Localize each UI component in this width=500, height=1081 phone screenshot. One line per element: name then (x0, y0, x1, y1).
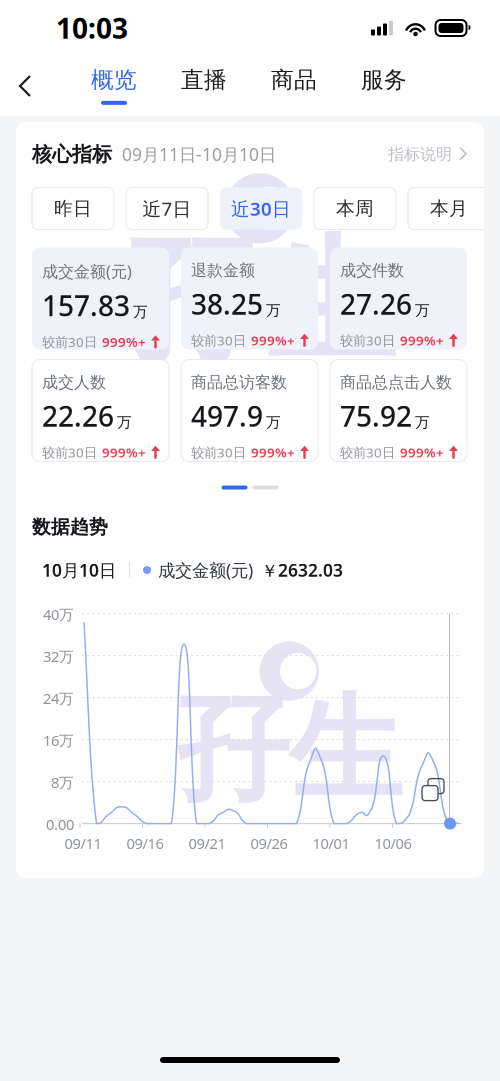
staticText: 较前30日 (42, 443, 97, 461)
staticText: 09/21 (188, 834, 225, 853)
staticText: 成交人数 (42, 373, 106, 392)
staticText: 999%+ (251, 331, 295, 349)
staticText: 16万 (43, 731, 74, 750)
staticText: 直播 (181, 66, 227, 94)
staticText: 万 (117, 413, 132, 431)
staticText: 157.83 (42, 287, 130, 324)
staticText: 09/26 (250, 834, 287, 853)
staticText: 昨日 (54, 197, 92, 220)
button[interactable]: 直播 (159, 56, 249, 116)
staticText: 较前30日 (340, 331, 395, 349)
button[interactable]: 商品 (249, 56, 339, 116)
button[interactable]: 指标说明 (388, 144, 468, 164)
staticText: 孖生 (126, 220, 396, 385)
staticText: 核心指标 (32, 142, 112, 167)
staticText: 10/06 (374, 834, 411, 853)
staticText: 999%+ (400, 331, 444, 349)
staticText: 999%+ (102, 443, 146, 461)
staticText: 本周 (336, 197, 374, 220)
staticText: 32万 (43, 647, 74, 666)
staticText: 万 (415, 301, 430, 319)
staticText: 24万 (43, 689, 74, 708)
staticText: 服务 (361, 66, 407, 94)
staticText: 概览 (91, 66, 137, 94)
staticText: 较前30日 (191, 331, 246, 349)
button[interactable]: 近7日 (126, 188, 208, 230)
staticText: 09/11 (64, 834, 101, 853)
staticText: 10:03 (56, 9, 128, 47)
staticText: 0.00 (46, 815, 74, 834)
staticText: 退款金额 (191, 261, 255, 280)
button[interactable]: 昨日 (32, 188, 114, 230)
staticText: 孖生 (176, 681, 402, 820)
staticText: 商品总点击人数 (340, 373, 452, 392)
staticText: 较前30日 (191, 443, 246, 461)
staticText: 较前30日 (340, 443, 395, 461)
staticText: 本月 (430, 197, 468, 220)
staticText: 09月11日-10月10日 (112, 143, 276, 166)
staticText: 万 (266, 413, 281, 431)
staticText: 万 (133, 303, 148, 321)
staticText: 近30日 (231, 196, 291, 221)
staticText: 40万 (43, 605, 74, 624)
staticText: 商品总访客数 (191, 373, 287, 392)
staticText: 成交金额(元) (42, 261, 132, 282)
staticText: 指标说明 (388, 144, 452, 164)
staticText: 38.25 (191, 285, 263, 322)
staticText: 497.9 (191, 397, 263, 434)
staticText: 近7日 (142, 196, 191, 221)
staticText: 10/01 (312, 834, 349, 853)
button[interactable]: 本周 (314, 188, 396, 230)
staticText: 999%+ (400, 443, 444, 461)
staticText: 8万 (51, 773, 74, 792)
staticText: 数据趋势 (32, 516, 108, 538)
staticText: 10月10日 (42, 558, 116, 581)
button[interactable]: 近30日 (220, 188, 302, 230)
staticText: 75.92 (340, 397, 412, 434)
button[interactable]: 概览 (69, 56, 159, 116)
staticText: 成交金额(元) (158, 558, 253, 581)
staticText: 27.26 (340, 285, 412, 322)
staticText: 万 (415, 413, 430, 431)
staticText: 万 (266, 301, 281, 319)
staticText: 较前30日 (42, 333, 97, 351)
button[interactable]: 返回 (0, 56, 69, 116)
staticText: 成交件数 (340, 261, 404, 280)
staticText: 999%+ (251, 443, 295, 461)
staticText: 22.26 (42, 397, 114, 434)
staticText: 09/16 (126, 834, 163, 853)
button[interactable]: 服务 (339, 56, 429, 116)
staticText: ￥2632.03 (261, 558, 343, 582)
button[interactable]: 本月 (408, 188, 490, 230)
staticText: 商品 (271, 66, 317, 94)
staticText: 999%+ (102, 333, 146, 351)
